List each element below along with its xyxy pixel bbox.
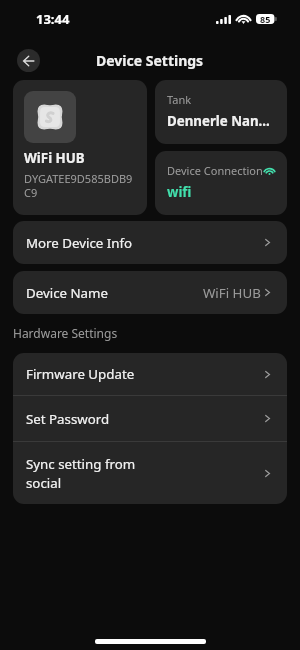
staticText: DYGATEE9D585BDB9C9 — [24, 171, 139, 200]
staticText: Sync setting from social — [26, 455, 263, 492]
staticText: Tank — [167, 92, 192, 107]
button[interactable]: Device Connection — [155, 151, 287, 215]
staticText: Device Name — [26, 284, 203, 302]
staticText: Dennerle Nan... — [167, 112, 270, 130]
button[interactable]: More Device Info — [13, 221, 287, 264]
staticText: Device Settings — [96, 51, 204, 70]
staticText: Device Connection — [167, 163, 263, 178]
button[interactable]: Firmware Update — [13, 353, 287, 395]
button[interactable]: Sync setting from social — [13, 442, 287, 504]
staticText: WiFi HUB — [24, 149, 85, 167]
button[interactable]: Back — [17, 49, 40, 72]
staticText: wifi — [167, 183, 192, 201]
button[interactable]: Tank — [155, 80, 287, 144]
staticText: 13:44 — [36, 10, 70, 28]
staticText: Set Password — [26, 410, 263, 428]
button[interactable]: WiFi HUB — [13, 80, 147, 215]
staticText: More Device Info — [26, 234, 263, 252]
button[interactable]: Set Password — [13, 396, 287, 441]
button[interactable]: Device Name — [13, 271, 287, 314]
staticText: 85 — [260, 13, 271, 25]
staticText: Hardware Settings — [13, 325, 118, 341]
staticText: Firmware Update — [26, 365, 263, 383]
staticText: WiFi HUB — [203, 284, 261, 302]
